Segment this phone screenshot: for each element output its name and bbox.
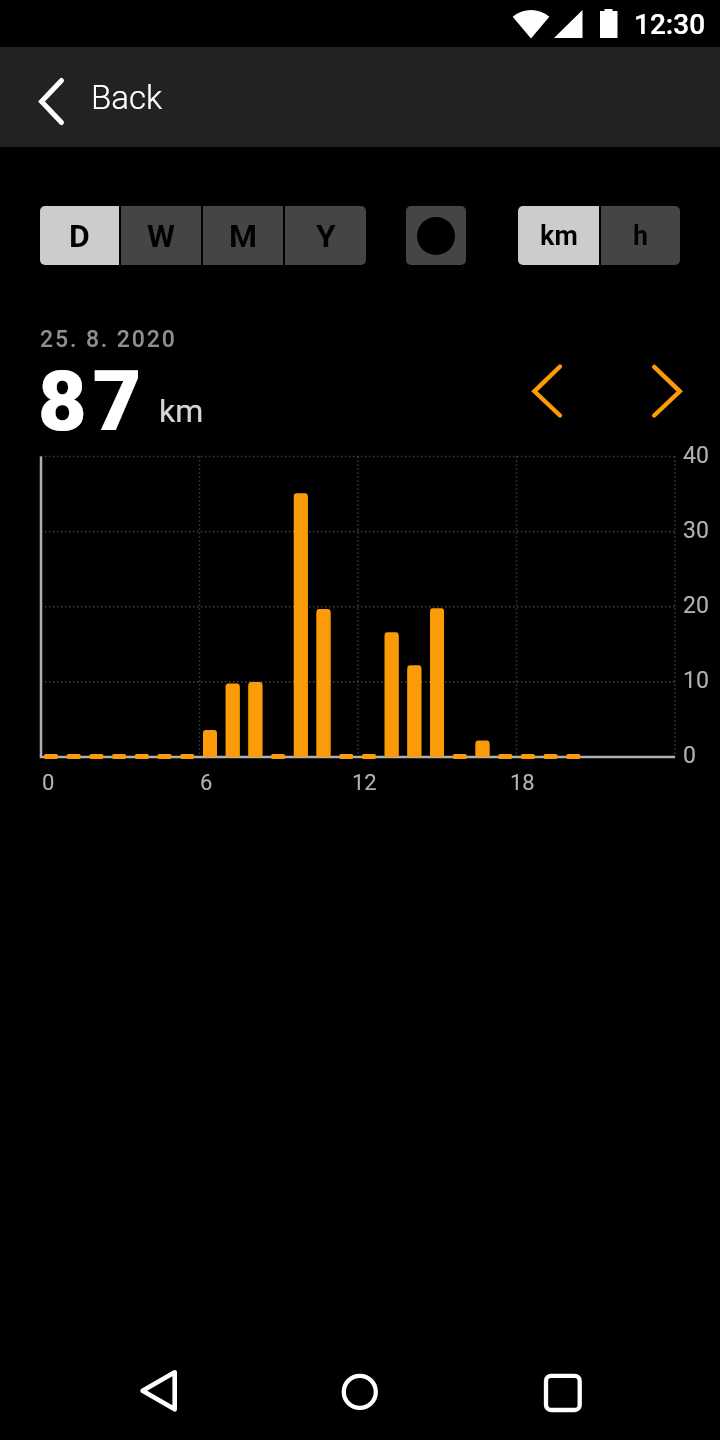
button[interactable]: M	[203, 206, 283, 265]
staticText: M	[229, 217, 258, 255]
staticText: 6	[200, 770, 213, 796]
staticText: h	[633, 220, 649, 252]
button[interactable]: km	[518, 206, 599, 265]
staticText: 30	[683, 517, 709, 544]
staticText: Y	[316, 217, 336, 255]
button[interactable]: Next day	[638, 358, 704, 424]
staticText: 18	[510, 770, 535, 796]
staticText: Back	[91, 78, 163, 117]
staticText: 0	[683, 742, 696, 769]
staticText: W	[147, 217, 175, 255]
button[interactable]: Previous day	[518, 358, 584, 424]
button[interactable]: Recent apps	[527, 1356, 597, 1426]
staticText: 25. 8. 2020	[40, 326, 177, 353]
button[interactable]: Back	[124, 1356, 194, 1426]
button[interactable]: h	[601, 206, 680, 265]
button[interactable]: Record activity	[406, 206, 466, 265]
staticText: 0	[42, 770, 55, 796]
staticText: 10	[683, 667, 709, 694]
staticText: 87	[38, 352, 148, 450]
staticText: 12	[352, 770, 377, 796]
button[interactable]: Home	[325, 1356, 395, 1426]
button[interactable]: W	[121, 206, 201, 265]
staticText: km	[159, 392, 204, 430]
button[interactable]: Y	[285, 206, 366, 265]
button[interactable]: D	[40, 206, 119, 265]
staticText: 12:30	[634, 8, 706, 41]
staticText: 20	[683, 592, 709, 619]
button[interactable]: Back	[0, 47, 720, 147]
staticText: km	[540, 220, 578, 252]
staticText: D	[69, 217, 90, 255]
staticText: 40	[683, 442, 709, 469]
